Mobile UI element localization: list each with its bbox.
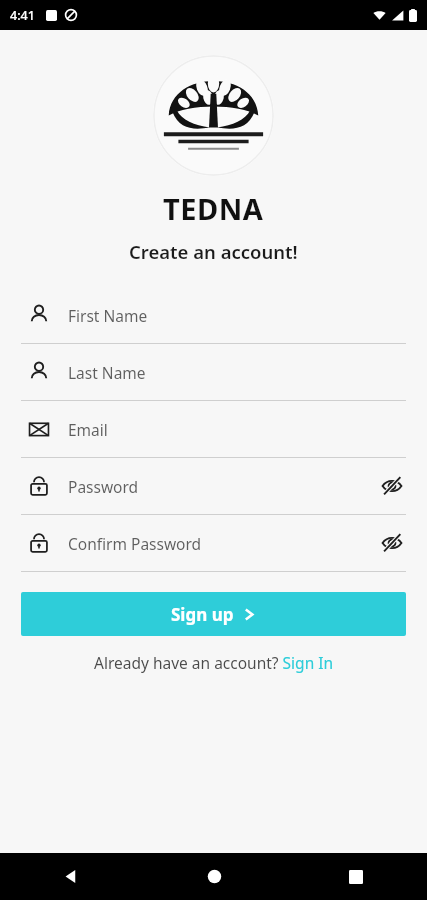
staticText: Create an account! (129, 239, 298, 264)
button[interactable]: Recent apps (285, 853, 427, 900)
button[interactable]: Already have an account? Sign In (0, 652, 427, 673)
staticText: Last Name (68, 362, 405, 383)
button[interactable]: Show password (379, 473, 405, 499)
button[interactable]: First Name (0, 287, 427, 344)
button[interactable]: Back (0, 853, 143, 900)
button[interactable]: Sign up (21, 592, 406, 636)
staticText: Password (68, 476, 379, 497)
staticText: Sign up (171, 603, 234, 626)
staticText: Already have an account? Sign In (94, 652, 334, 673)
staticText: 4:41 (10, 7, 35, 24)
button[interactable]: Home (143, 853, 285, 900)
staticText: TEDNA (163, 189, 264, 228)
staticText: Email (68, 419, 405, 440)
button[interactable]: Password (0, 458, 427, 515)
staticText: First Name (68, 305, 405, 326)
button[interactable]: Last Name (0, 344, 427, 401)
button[interactable]: Show password (379, 530, 405, 556)
button[interactable]: Confirm Password (0, 515, 427, 572)
button[interactable]: Email (0, 401, 427, 458)
staticText: Confirm Password (68, 533, 379, 554)
